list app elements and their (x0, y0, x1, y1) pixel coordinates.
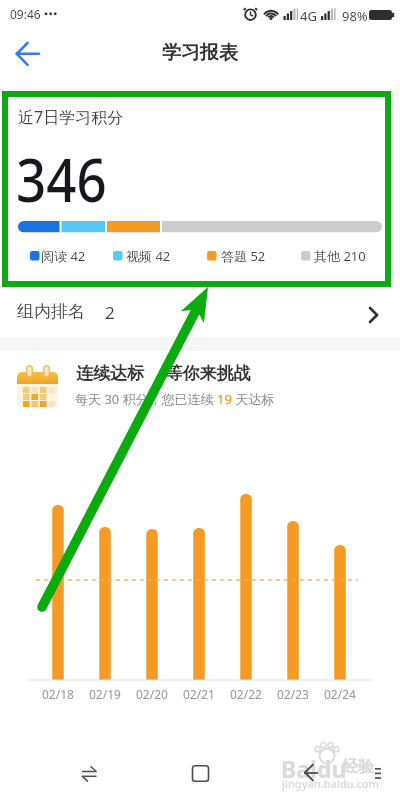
staticText: 4G (300, 7, 317, 25)
button[interactable] (146, 748, 252, 796)
staticText: 02/21 (183, 686, 215, 702)
button[interactable] (8, 38, 48, 70)
staticText: 02/23 (277, 686, 309, 702)
staticText: 02/20 (136, 686, 168, 702)
staticText: 每天 30 积分，您已连续 19 天达标 (75, 390, 275, 408)
staticText: 答题 52 (221, 247, 266, 265)
button[interactable] (40, 748, 146, 796)
staticText: 98% (342, 7, 368, 25)
staticText: 346 (16, 138, 107, 220)
staticText: 02/22 (230, 686, 262, 702)
staticText: 02/24 (324, 686, 356, 702)
staticText: 02/18 (42, 686, 74, 702)
button[interactable] (252, 748, 358, 796)
staticText: jingyan.baidu.com (282, 776, 379, 791)
staticText: 经验 (342, 757, 374, 777)
staticText: 近7日学习积分 (18, 106, 124, 128)
staticText: 视频 42 (126, 247, 171, 265)
staticText: 其他 210 (314, 247, 366, 265)
staticText: 学习报表 (162, 41, 238, 65)
staticText: 组内排名 (17, 301, 85, 322)
staticText: 连续达标 ，等你来挑战 (76, 361, 251, 384)
staticText: 阅读 42 (41, 247, 86, 265)
button[interactable]: 组内排名 (0, 294, 400, 336)
staticText: 09:46 (10, 6, 41, 22)
staticText: Baidu (281, 753, 347, 784)
staticText: 02/19 (89, 686, 121, 702)
staticText: 2 (105, 301, 115, 324)
